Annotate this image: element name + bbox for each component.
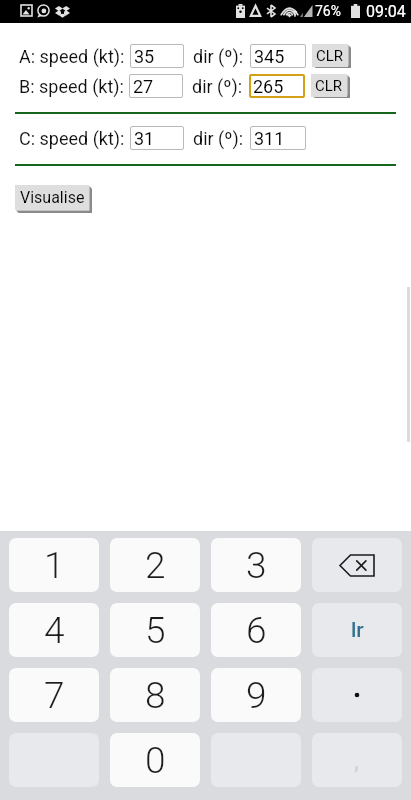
staticText: 8 bbox=[145, 674, 166, 717]
staticText: dir (º): bbox=[193, 46, 244, 67]
button[interactable]: 3 bbox=[211, 538, 301, 592]
button[interactable]: Visualise bbox=[15, 185, 89, 210]
button[interactable]: 35 bbox=[130, 44, 184, 68]
button[interactable]: 2 bbox=[110, 538, 200, 592]
button[interactable]: 5 bbox=[110, 603, 200, 657]
staticText: CLR bbox=[316, 47, 344, 65]
staticText: 3 bbox=[246, 544, 267, 587]
staticText: dir (º): bbox=[192, 76, 243, 97]
staticText: lr bbox=[351, 618, 364, 643]
staticText: Visualise bbox=[20, 188, 85, 207]
button[interactable]: Decimal point bbox=[312, 668, 402, 722]
staticText: B: speed (kt): bbox=[19, 76, 124, 97]
staticText: CLR bbox=[315, 77, 343, 95]
staticText: 76% bbox=[315, 3, 341, 19]
staticText: A: speed (kt): bbox=[19, 46, 125, 67]
button[interactable]: 345 bbox=[250, 44, 306, 68]
staticText: 9 bbox=[246, 674, 267, 717]
button[interactable]: 9 bbox=[211, 668, 301, 722]
staticText: 5 bbox=[145, 609, 166, 652]
staticText: , bbox=[354, 745, 360, 775]
staticText: 265 bbox=[253, 76, 284, 97]
button[interactable]: CLR bbox=[312, 44, 348, 67]
staticText: 31 bbox=[134, 128, 155, 149]
staticText: 1 bbox=[44, 544, 65, 587]
button[interactable]: 7 bbox=[9, 668, 99, 722]
staticText: 311 bbox=[254, 128, 285, 149]
button[interactable]: CLR bbox=[311, 74, 347, 97]
button[interactable]: 311 bbox=[250, 126, 306, 150]
button[interactable]: 4 bbox=[9, 603, 99, 657]
staticText: dir (º): bbox=[193, 128, 244, 149]
staticText: 345 bbox=[254, 46, 285, 67]
button[interactable]: 27 bbox=[129, 74, 183, 98]
button[interactable]: 8 bbox=[110, 668, 200, 722]
button[interactable]: 265 bbox=[249, 74, 305, 98]
staticText: 6 bbox=[246, 609, 267, 652]
staticText: C: speed (kt): bbox=[19, 128, 125, 149]
button[interactable]: 31 bbox=[130, 126, 184, 150]
staticText: 09:04 bbox=[366, 2, 406, 21]
staticText: 35 bbox=[134, 46, 155, 67]
staticText: 7 bbox=[44, 674, 65, 717]
staticText: 2 bbox=[145, 544, 166, 587]
staticText: 4 bbox=[44, 609, 65, 652]
button[interactable]: lr bbox=[312, 603, 402, 657]
button[interactable]: 0 bbox=[110, 733, 200, 787]
button[interactable]: 1 bbox=[9, 538, 99, 592]
staticText: 0 bbox=[145, 739, 166, 782]
button[interactable]: Backspace bbox=[312, 538, 402, 592]
button[interactable]: 6 bbox=[211, 603, 301, 657]
staticText: 27 bbox=[133, 76, 154, 97]
